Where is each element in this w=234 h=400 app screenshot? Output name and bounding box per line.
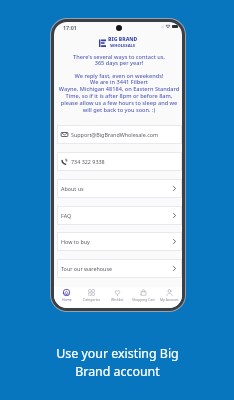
staticText: Tour our warehouse — [61, 265, 113, 272]
staticText: Use your existing Big Brand account — [56, 345, 179, 380]
staticText: There's several ways to contact us, 365 … — [58, 53, 180, 67]
button[interactable]: My Account — [156, 287, 182, 302]
staticText: FAQ — [61, 212, 72, 219]
staticText: Categories — [83, 297, 101, 302]
staticText: Shopping Cart — [132, 297, 155, 302]
staticText: My Account — [160, 297, 179, 302]
staticText: We reply fast, even on weekends! We are … — [57, 72, 181, 114]
button[interactable]: Wishlist — [104, 287, 130, 302]
staticText: WHOLESALE — [110, 43, 136, 49]
staticText: Support@BigBrandWholesale.com — [71, 131, 159, 138]
button[interactable]: FAQ — [57, 206, 182, 225]
staticText: 17:01 — [63, 24, 77, 31]
button[interactable]: Tour our warehouse — [57, 259, 182, 278]
button[interactable]: Home — [54, 287, 79, 302]
staticText: Wishlist — [111, 297, 124, 302]
button[interactable]: How to buy — [57, 232, 182, 251]
staticText: About us — [61, 185, 84, 192]
button[interactable]: Support@BigBrandWholesale.com — [57, 125, 182, 144]
button[interactable]: Categories — [79, 287, 104, 302]
staticText: 734 322 9338 — [71, 158, 105, 165]
button[interactable]: About us — [57, 179, 182, 198]
staticText: How to buy — [61, 238, 90, 245]
staticText: Home — [62, 297, 72, 302]
button[interactable]: 734 322 9338 — [57, 152, 182, 171]
button[interactable]: Shopping Cart — [130, 287, 156, 302]
staticText: BIG BRAND — [108, 36, 138, 43]
